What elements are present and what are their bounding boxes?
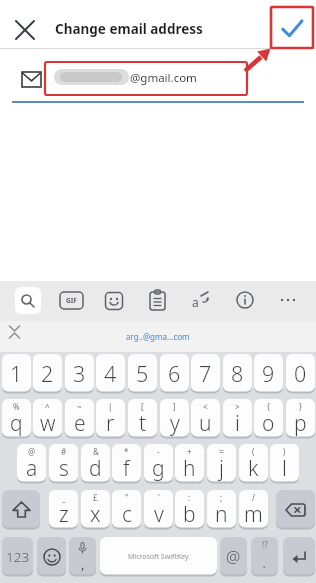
staticText: @ xyxy=(28,446,36,457)
staticText: arg..@gma...com xyxy=(126,331,190,342)
staticText: 4 xyxy=(104,359,117,388)
button[interactable]: a xyxy=(192,290,212,310)
button[interactable]: 3 xyxy=(65,354,94,393)
button[interactable]: 4 xyxy=(96,354,125,393)
staticText: n xyxy=(215,500,228,529)
staticText: } xyxy=(299,401,303,412)
staticText: { xyxy=(267,401,271,412)
button[interactable]: - xyxy=(144,444,173,483)
button[interactable]: > xyxy=(223,399,252,438)
staticText: a xyxy=(26,454,38,483)
staticText: m xyxy=(244,500,263,529)
button[interactable]: 2 xyxy=(33,354,62,393)
staticText: , xyxy=(81,555,85,573)
button[interactable] xyxy=(8,324,21,342)
staticText: ~ xyxy=(77,401,82,412)
button[interactable]: ] xyxy=(160,399,189,438)
button[interactable]: Microsoft SwiftKey xyxy=(100,537,217,576)
staticText: + xyxy=(187,446,192,457)
button[interactable]: GIF xyxy=(60,292,83,309)
staticText: 8 xyxy=(231,359,244,388)
button[interactable]: 9 xyxy=(254,354,283,393)
staticText: y xyxy=(170,409,180,438)
button[interactable]: [ xyxy=(128,399,157,438)
button[interactable]: ^ xyxy=(33,399,62,438)
button[interactable]: " xyxy=(112,490,141,529)
staticText: q xyxy=(10,409,23,438)
button[interactable]: ; xyxy=(207,490,236,529)
button[interactable]: 123 xyxy=(2,537,33,576)
button[interactable]: ~ xyxy=(65,399,94,438)
staticText: ) xyxy=(283,446,286,457)
button[interactable]: arg..@gma...com xyxy=(0,321,316,352)
staticText: ; xyxy=(220,492,223,503)
button[interactable]: @ xyxy=(220,537,247,576)
button[interactable] xyxy=(283,537,315,576)
button[interactable] xyxy=(149,290,166,311)
button[interactable] xyxy=(9,14,41,46)
button[interactable]: 5 xyxy=(128,354,157,393)
button[interactable] xyxy=(104,291,124,311)
staticText: 5 xyxy=(136,359,149,388)
staticText: x xyxy=(90,500,101,529)
staticText: ^ xyxy=(45,401,50,412)
staticText: w xyxy=(40,409,56,438)
staticText: Microsoft SwiftKey xyxy=(128,552,189,562)
staticText: < xyxy=(203,401,208,412)
button[interactable] xyxy=(37,537,66,576)
button[interactable]: !? xyxy=(251,537,278,576)
button[interactable]: @ xyxy=(17,444,46,483)
button[interactable]: * xyxy=(112,444,141,483)
staticText: k xyxy=(248,454,259,483)
staticText: @gmail.com xyxy=(130,70,197,86)
staticText: # xyxy=(61,446,67,457)
button[interactable] xyxy=(276,490,315,529)
button[interactable]: 8 xyxy=(223,354,252,393)
staticText: 3 xyxy=(73,359,86,388)
button[interactable]: < xyxy=(191,399,220,438)
button[interactable]: 1 xyxy=(2,354,31,393)
staticText: ' xyxy=(158,492,160,503)
staticText: 2 xyxy=(41,359,54,388)
staticText: o xyxy=(262,409,275,438)
button[interactable]: 6 xyxy=(160,354,189,393)
staticText: ] xyxy=(173,401,176,412)
staticText: v xyxy=(154,500,164,529)
button[interactable] xyxy=(279,296,297,304)
staticText: d xyxy=(89,454,102,483)
button[interactable]: & xyxy=(81,444,110,483)
button[interactable]: = xyxy=(207,444,236,483)
button[interactable]: £ xyxy=(81,490,110,529)
button[interactable]: # xyxy=(49,444,78,483)
staticText: : xyxy=(188,492,191,503)
button[interactable]: % xyxy=(2,399,31,438)
button[interactable]: 0 xyxy=(286,354,315,393)
button[interactable]: ( xyxy=(239,444,268,483)
button[interactable] xyxy=(15,287,41,314)
button[interactable]: : xyxy=(175,490,204,529)
button[interactable]: { xyxy=(254,399,283,438)
button[interactable] xyxy=(2,490,40,529)
staticText: % xyxy=(13,401,20,412)
staticText: z xyxy=(59,500,69,529)
staticText: !? xyxy=(262,539,268,550)
staticText: / xyxy=(252,492,255,503)
button[interactable]: } xyxy=(286,399,315,438)
staticText: | xyxy=(108,401,113,412)
button[interactable] xyxy=(236,291,254,309)
button[interactable]: / xyxy=(239,490,268,529)
staticText: i xyxy=(235,409,240,438)
button[interactable]: , xyxy=(69,537,96,576)
button[interactable]: | xyxy=(96,399,125,438)
button[interactable]: ) xyxy=(270,444,299,483)
button[interactable]: 7 xyxy=(191,354,220,393)
button[interactable] xyxy=(274,10,310,46)
staticText: 9 xyxy=(262,359,275,388)
button[interactable]: + xyxy=(175,444,204,483)
button[interactable]: _ xyxy=(49,490,78,529)
staticText: f xyxy=(123,454,130,483)
staticText: 6 xyxy=(168,359,181,388)
staticText: a xyxy=(192,294,199,310)
button[interactable]: ' xyxy=(144,490,173,529)
staticText: " xyxy=(125,492,129,503)
